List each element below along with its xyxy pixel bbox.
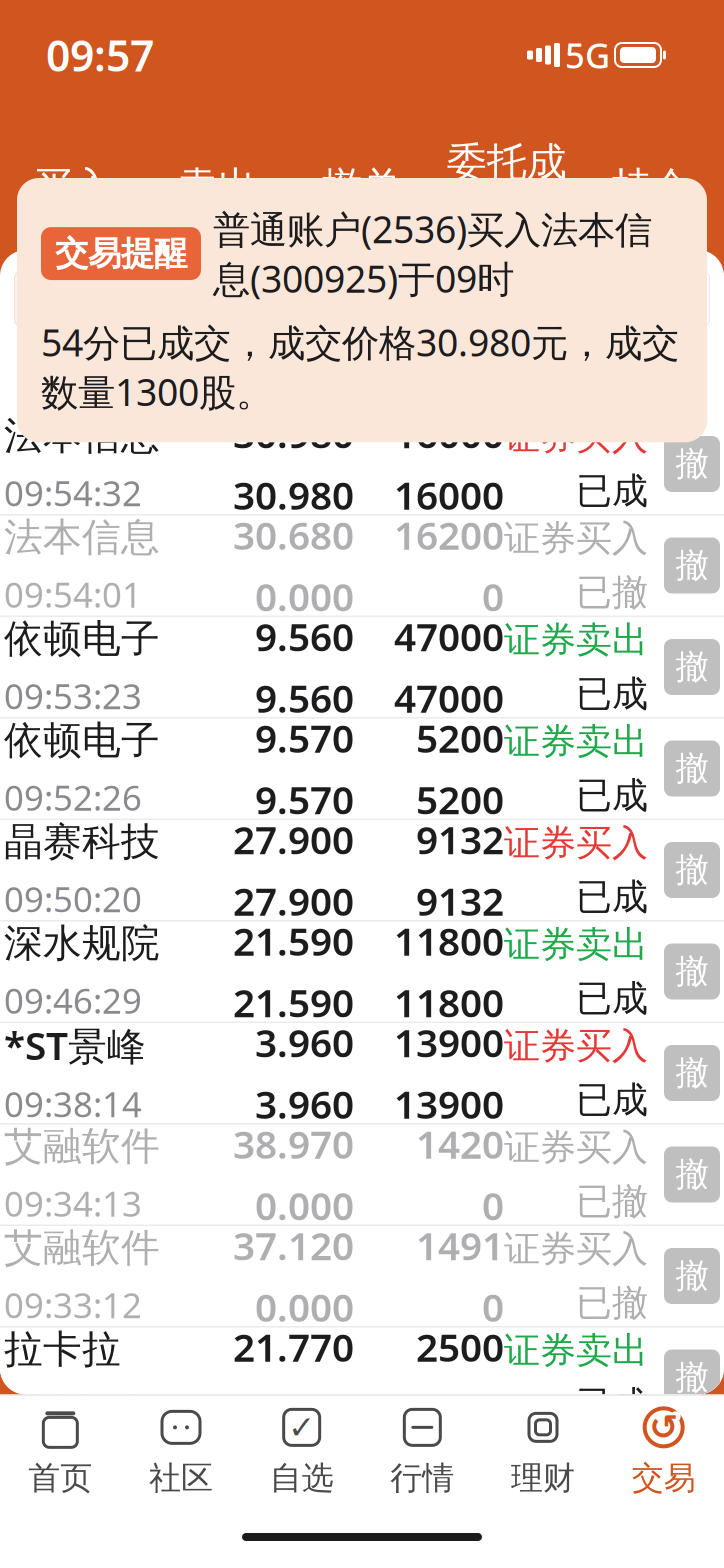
button[interactable]: 行情 (362, 1396, 483, 1506)
staticText: 09:32:00 (4, 1383, 142, 1429)
staticText: 撤 (675, 646, 708, 687)
staticText: 历史委托 (377, 277, 521, 321)
staticText: 证券买入 (504, 516, 648, 560)
button[interactable]: 当日成交 (188, 270, 362, 328)
staticText: 证券买入 (504, 1227, 648, 1271)
staticText: 委托成交 (447, 138, 567, 236)
button[interactable]: 撤单 (664, 1146, 720, 1202)
staticText: 9.560 (255, 672, 354, 723)
staticText: 30.980 (233, 469, 354, 520)
staticText: 当日委托 (29, 277, 173, 321)
button[interactable]: 卖出 (145, 162, 290, 223)
staticText: 已成 (576, 469, 648, 513)
staticText: 0.000 (255, 570, 354, 622)
staticText: ✓ (288, 1409, 315, 1445)
staticText: 理财 (511, 1458, 575, 1498)
staticText: 撤 (675, 849, 708, 890)
staticText: 21.590 (233, 976, 354, 1028)
button[interactable]: 撤单 (664, 639, 720, 695)
button[interactable]: 撤单 (290, 162, 434, 223)
button[interactable]: 历史成交 (536, 270, 710, 328)
staticText: 证券买入 (504, 1125, 648, 1169)
button[interactable]: 撤单 (664, 1248, 720, 1304)
staticText: 1491 (416, 1220, 504, 1271)
staticText: 09:38:14 (4, 1081, 142, 1127)
button[interactable]: 撤单 (664, 740, 720, 796)
button[interactable]: 撤单 (664, 436, 720, 492)
staticText: 交易提醒 (55, 233, 187, 274)
staticText: 已成 (576, 976, 648, 1021)
button[interactable]: 委托成交 (434, 138, 579, 248)
button[interactable]: ✓ (241, 1396, 362, 1506)
staticText: 9132 (416, 814, 504, 865)
button[interactable]: 持仓 (579, 162, 724, 223)
staticText: 1420 (416, 1118, 504, 1169)
button[interactable]: 撤单 (664, 842, 720, 898)
staticText: 法本信息 (4, 514, 160, 561)
button[interactable]: 首页 (0, 1396, 121, 1506)
staticText: 深水规院 (4, 920, 160, 967)
staticText: 证券卖出 (504, 618, 648, 662)
button[interactable]: *ST景峰 (0, 1023, 724, 1123)
staticText: 09:34:13 (4, 1180, 142, 1226)
staticText: 撤 (675, 545, 708, 586)
staticText: 持仓 (612, 162, 692, 211)
staticText: 09:50:20 (4, 876, 142, 922)
staticText: 21.770 (233, 1321, 354, 1372)
staticText: 股票/时间 (28, 356, 172, 400)
button[interactable]: 撤单 (664, 1349, 720, 1405)
button[interactable]: 理财 (483, 1396, 603, 1506)
button[interactable]: 历史委托 (362, 270, 536, 328)
staticText: 9.560 (255, 611, 354, 662)
button[interactable]: 社区 (121, 1396, 241, 1506)
staticText: 38.970 (233, 1118, 354, 1169)
staticText: 2500 (416, 1321, 504, 1372)
staticText: 已成 (576, 773, 648, 818)
button[interactable]: 撤单 (664, 1045, 720, 1101)
button[interactable]: 买入 (0, 162, 145, 223)
staticText: 社区 (149, 1458, 213, 1498)
staticText: 16000 (394, 469, 504, 520)
button[interactable]: 拉卡拉 (0, 1327, 724, 1427)
staticText: 已撤 (576, 1281, 648, 1325)
staticText: 撤 (675, 1052, 708, 1093)
staticText: 证券买入 (504, 415, 648, 459)
staticText: 状态/操作 (552, 356, 696, 400)
button[interactable]: 艾融软件 (0, 1226, 724, 1326)
button[interactable]: 撤单 (664, 537, 720, 593)
button[interactable]: ↺ (603, 1396, 724, 1506)
staticText: 撤 (675, 748, 708, 789)
staticText: 委价/均价 (234, 356, 378, 400)
button[interactable]: 依顿电子 (0, 718, 724, 818)
staticText: 撤 (675, 1357, 708, 1398)
button[interactable]: 撤单 (664, 943, 720, 999)
staticText: 16000 (394, 408, 504, 459)
button[interactable]: 深水规院 (0, 921, 724, 1021)
staticText: 已撤 (576, 570, 648, 615)
staticText: 撤 (675, 1154, 708, 1195)
staticText: 证券卖出 (504, 1328, 648, 1372)
staticText: 5G (565, 32, 610, 78)
staticText: 13900 (394, 1017, 504, 1068)
staticText: 法本信息 (4, 412, 160, 460)
staticText: 9.570 (255, 773, 354, 825)
staticText: 卖出 (177, 162, 257, 211)
button[interactable]: 法本信息 (0, 414, 724, 514)
staticText: 已成 (576, 875, 648, 919)
staticText: 16200 (394, 509, 504, 560)
staticText: 11800 (394, 976, 504, 1028)
button[interactable]: 当日委托 (14, 270, 188, 328)
staticText: 依顿电子 (4, 615, 160, 663)
button[interactable]: 依顿电子 (0, 617, 724, 717)
button[interactable]: 艾融软件 (0, 1124, 724, 1224)
staticText: *ST景峰 (4, 1019, 146, 1071)
staticText: 交易 (632, 1458, 696, 1498)
staticText: 普通账户(2536)买入法本信息(300925)于09时 (213, 204, 652, 303)
staticText: 撤 (675, 1255, 708, 1296)
staticText: 买入 (32, 162, 112, 211)
button[interactable]: 法本信息 (0, 515, 724, 615)
button[interactable]: 晶赛科技 (0, 820, 724, 920)
staticText: 撤单 (322, 162, 402, 211)
staticText: 委量/成交 (384, 356, 528, 400)
staticText: ↺ (649, 1408, 678, 1447)
